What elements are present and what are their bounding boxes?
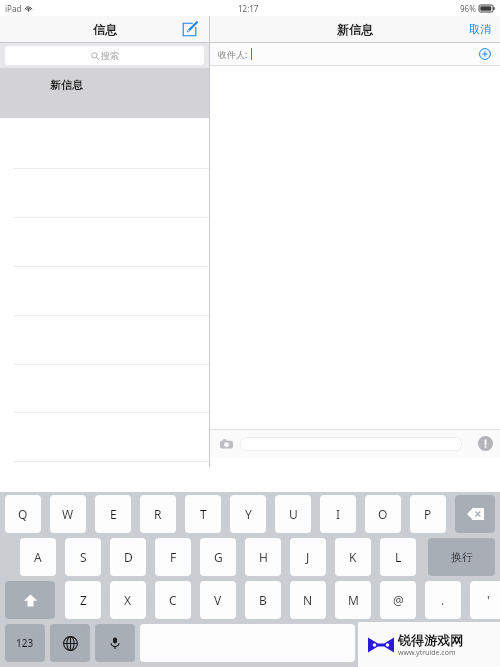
button[interactable]: G	[200, 538, 236, 576]
button[interactable]: T	[185, 495, 221, 533]
button[interactable]: 123	[5, 624, 45, 662]
button[interactable]: O	[365, 495, 401, 533]
staticText: www.ytruide.com	[398, 648, 456, 658]
staticText: A	[34, 549, 42, 565]
button[interactable]: R	[140, 495, 176, 533]
button[interactable]: Y	[230, 495, 266, 533]
staticText: B	[259, 592, 267, 608]
staticText: P	[424, 506, 432, 522]
staticText: G	[214, 549, 223, 565]
staticText: H	[259, 549, 268, 565]
button[interactable]: K	[335, 538, 371, 576]
staticText: 信息	[93, 22, 117, 37]
button[interactable]: '	[470, 581, 500, 619]
staticText: 96%	[460, 3, 476, 14]
staticText: 收件人:	[218, 48, 248, 60]
staticText: N	[303, 592, 313, 608]
staticText: L	[395, 549, 402, 565]
button[interactable]: 收件人:	[210, 43, 500, 65]
button[interactable]: Camera	[218, 436, 234, 452]
button[interactable]: X	[110, 581, 146, 619]
button[interactable]: Record audio	[477, 435, 494, 452]
staticText: 12:17	[238, 3, 259, 14]
button[interactable]: M	[335, 581, 371, 619]
staticText: 锐得游戏网	[398, 632, 463, 648]
button[interactable]: Q	[5, 495, 41, 533]
staticText: Y	[245, 506, 252, 522]
staticText: 取消	[469, 22, 491, 36]
staticText: K	[349, 549, 357, 565]
button[interactable]: V	[200, 581, 236, 619]
staticText: X	[124, 592, 132, 608]
button[interactable]: Shift	[5, 581, 55, 619]
staticText: 123	[16, 636, 34, 650]
staticText: Q	[18, 506, 28, 522]
staticText: @	[393, 592, 404, 608]
button[interactable]: C	[155, 581, 191, 619]
staticText: C	[169, 592, 177, 608]
button[interactable]: 搜索	[5, 46, 204, 65]
button[interactable]: E	[95, 495, 131, 533]
staticText: D	[124, 549, 133, 565]
button[interactable]: @	[380, 581, 416, 619]
staticText: O	[378, 506, 388, 522]
staticText: 换行	[451, 550, 473, 564]
button[interactable]: Switch keyboard	[50, 624, 90, 662]
button[interactable]: Backspace	[455, 495, 495, 533]
button[interactable]: A	[20, 538, 56, 576]
button[interactable]: J	[290, 538, 326, 576]
button[interactable]: P	[410, 495, 446, 533]
staticText: '	[487, 592, 490, 608]
staticText: V	[214, 592, 222, 608]
staticText: E	[110, 506, 117, 522]
button[interactable]: S	[65, 538, 101, 576]
staticText: 新信息	[50, 78, 83, 92]
button[interactable]: N	[290, 581, 326, 619]
button[interactable]: Dictation	[95, 624, 135, 662]
button[interactable]: W	[50, 495, 86, 533]
staticText: S	[80, 549, 87, 565]
button[interactable]: Compose new message	[179, 19, 199, 39]
staticText: J	[306, 549, 310, 565]
button[interactable]: B	[245, 581, 281, 619]
button[interactable]: 新信息	[0, 68, 209, 118]
button[interactable]: .	[425, 581, 461, 619]
staticText: 搜索	[101, 50, 119, 61]
button[interactable]: I	[320, 495, 356, 533]
button[interactable]: 换行	[428, 538, 495, 576]
button[interactable]: Z	[65, 581, 101, 619]
button[interactable]: D	[110, 538, 146, 576]
staticText: R	[154, 506, 162, 522]
staticText: F	[170, 549, 177, 565]
staticText: U	[289, 506, 298, 522]
button[interactable]	[240, 437, 462, 451]
staticText: 新信息	[337, 22, 373, 37]
staticText: iPad	[5, 3, 22, 14]
staticText: M	[348, 592, 359, 608]
staticText: .	[441, 592, 445, 608]
button[interactable]: Add contact	[477, 46, 493, 62]
staticText: W	[62, 506, 74, 522]
staticText: I	[336, 506, 341, 522]
button[interactable]: F	[155, 538, 191, 576]
staticText: Z	[80, 592, 87, 608]
button[interactable]: U	[275, 495, 311, 533]
button[interactable]: 取消	[469, 22, 491, 36]
button[interactable]: L	[380, 538, 416, 576]
staticText: T	[200, 506, 207, 522]
button[interactable]: H	[245, 538, 281, 576]
